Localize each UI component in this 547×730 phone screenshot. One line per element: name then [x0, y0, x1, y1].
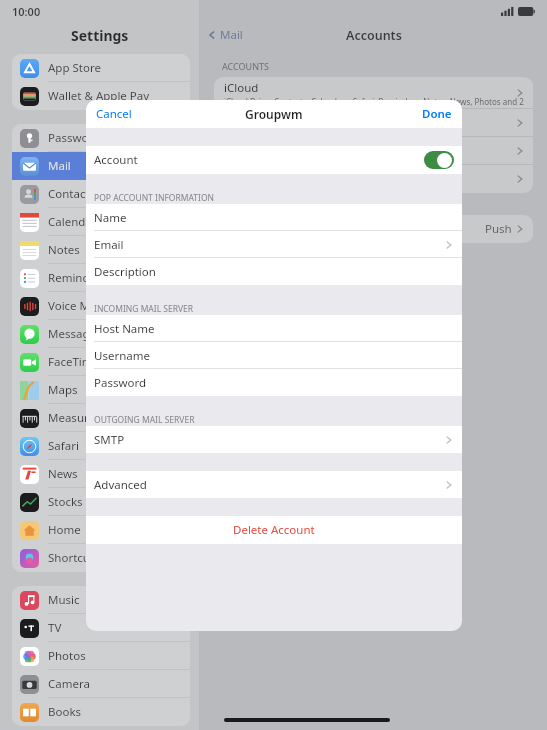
staticText: Description — [94, 264, 156, 280]
button[interactable]: Cancel — [86, 101, 142, 127]
staticText: Cancel — [96, 106, 132, 122]
button[interactable]: Photos — [12, 642, 190, 670]
button[interactable]: Messages — [12, 320, 190, 348]
staticText: Done — [422, 106, 452, 122]
button[interactable]: Safari — [12, 432, 190, 460]
button[interactable]: Shortcuts — [12, 544, 190, 572]
staticText: Account — [94, 152, 138, 168]
staticText: Voice Memos — [48, 298, 120, 314]
button[interactable]: Email — [86, 231, 462, 258]
button[interactable]: Maps — [12, 376, 190, 404]
button[interactable]: Delete Account — [86, 516, 462, 544]
staticText: App Store — [48, 60, 101, 76]
button[interactable]: Done — [412, 101, 462, 127]
staticText: Contacts — [48, 186, 96, 202]
staticText: 10:00 — [12, 4, 41, 19]
staticText: Host Name — [94, 321, 155, 337]
staticText: Password — [94, 375, 147, 391]
staticText: Music — [48, 592, 80, 608]
button[interactable]: Measure — [12, 404, 190, 432]
button[interactable]: Mail — [12, 152, 190, 180]
button[interactable]: FaceTime — [12, 348, 190, 376]
staticText: Push — [485, 221, 512, 237]
button[interactable] — [214, 137, 533, 165]
button[interactable]: iCloud — [214, 77, 533, 109]
button[interactable]: Name — [86, 204, 462, 231]
staticText: Wallet & Apple Pay — [48, 88, 150, 104]
button[interactable]: SMTP — [86, 426, 462, 453]
button[interactable]: Description — [86, 258, 462, 285]
button[interactable]: Passwords — [12, 124, 190, 152]
staticText: Username — [94, 348, 150, 364]
staticText: Home — [48, 522, 81, 538]
staticText: News — [48, 466, 78, 482]
button[interactable]: Contacts — [12, 180, 190, 208]
button[interactable]: Books — [12, 698, 190, 726]
staticText: TV — [48, 620, 62, 636]
button[interactable]: App Store — [12, 54, 190, 82]
button[interactable]: Advanced — [86, 471, 462, 498]
staticText: Groupwm — [245, 106, 303, 122]
button[interactable]: Music — [12, 586, 190, 614]
button[interactable]: Home — [12, 516, 190, 544]
staticText: Maps — [48, 382, 78, 398]
staticText: FaceTime — [48, 354, 100, 370]
staticText: ACCOUNTS — [222, 60, 269, 72]
staticText: iCloud Drive, Contacts, Calendars, Safar… — [224, 96, 533, 107]
staticText: Mail — [220, 27, 243, 43]
button[interactable]: News — [12, 460, 190, 488]
button[interactable]: Wallet & Apple Pay — [12, 82, 190, 110]
button[interactable]: TV — [12, 614, 190, 642]
button[interactable]: Account enabled — [424, 151, 454, 169]
button[interactable] — [214, 109, 533, 137]
staticText: Shortcuts — [48, 550, 100, 566]
staticText: Notes — [48, 242, 80, 258]
staticText: Advanced — [94, 477, 147, 493]
button[interactable]: Account — [86, 146, 462, 174]
staticText: Safari — [48, 438, 79, 454]
button[interactable]: Calendar — [12, 208, 190, 236]
staticText: Photos — [48, 648, 86, 664]
button[interactable]: Username — [86, 342, 462, 369]
staticText: Passwords — [48, 130, 106, 146]
button[interactable] — [214, 165, 533, 193]
staticText: Stocks — [48, 494, 83, 510]
button[interactable]: Mail — [208, 27, 243, 43]
button[interactable]: Camera — [12, 670, 190, 698]
staticText: Accounts — [346, 27, 402, 44]
staticText: POP ACCOUNT INFORMATION — [94, 192, 214, 204]
staticText: Measure — [48, 410, 95, 426]
staticText: INCOMING MAIL SERVER — [94, 303, 194, 315]
staticText: Settings — [71, 26, 129, 45]
staticText: Messages — [48, 326, 102, 342]
staticText: OUTGOING MAIL SERVER — [94, 414, 195, 426]
button[interactable]: Reminders — [12, 264, 190, 292]
button[interactable]: Stocks — [12, 488, 190, 516]
staticText: Reminders — [48, 270, 107, 286]
staticText: SMTP — [94, 432, 125, 448]
staticText: iCloud — [224, 80, 259, 96]
staticText: Mail — [48, 158, 71, 174]
staticText: Email — [94, 237, 124, 253]
staticText: Books — [48, 704, 82, 720]
button[interactable]: Host Name — [86, 315, 462, 342]
staticText: Camera — [48, 676, 90, 692]
staticText: Calendar — [48, 214, 97, 230]
button[interactable]: Voice Memos — [12, 292, 190, 320]
button[interactable]: Password — [86, 369, 462, 396]
button[interactable]: Push — [214, 215, 533, 243]
staticText: Name — [94, 210, 127, 226]
button[interactable]: Notes — [12, 236, 190, 264]
staticText: Delete Account — [233, 522, 315, 538]
